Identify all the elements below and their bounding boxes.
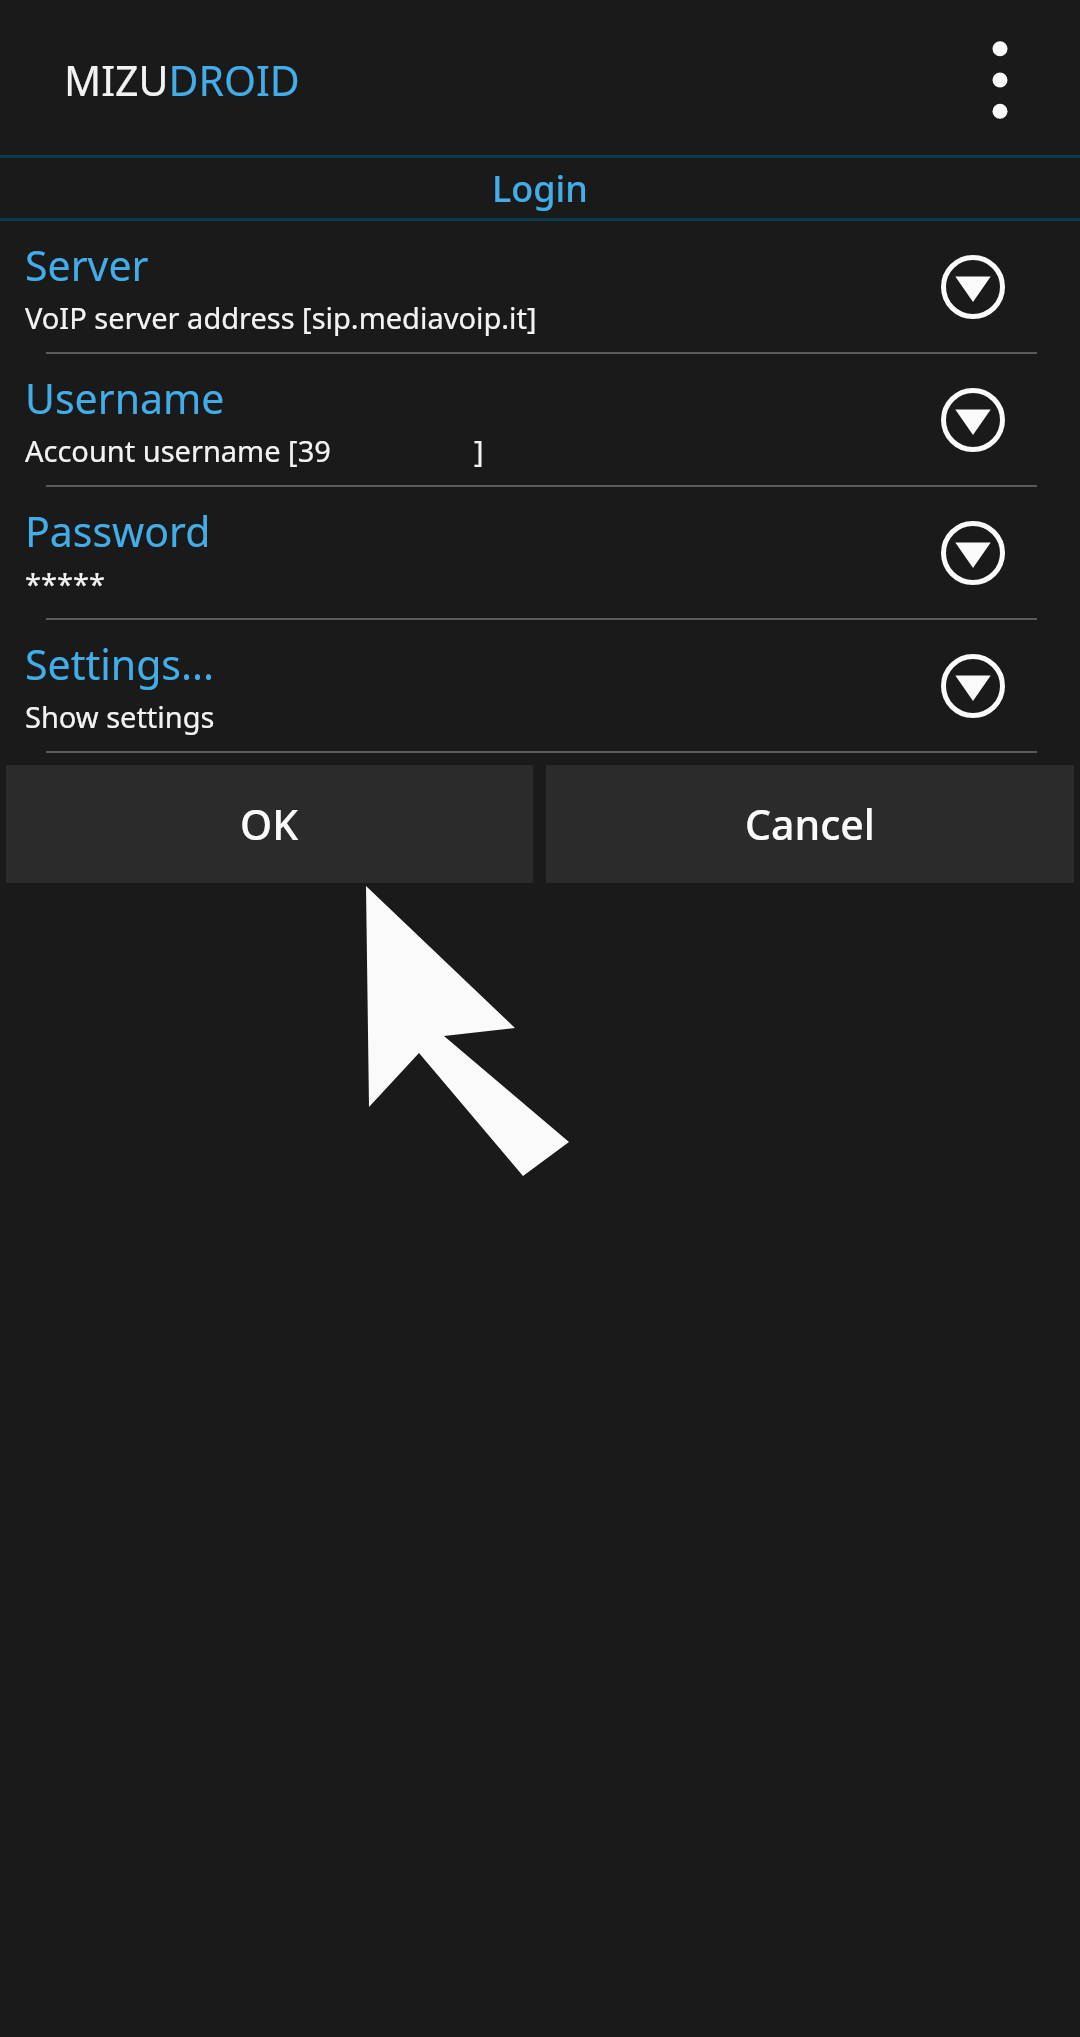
button[interactable]: More options — [942, 22, 1058, 138]
staticText: Settings... — [25, 636, 214, 692]
button[interactable]: Login — [0, 158, 1080, 218]
staticText: VoIP server address [sip.mediavoip.it] — [25, 298, 537, 337]
button[interactable]: Settings... — [0, 620, 1080, 753]
button[interactable]: Expand Username — [907, 354, 1038, 485]
button[interactable]: Expand Server — [907, 221, 1038, 352]
button[interactable]: Expand Password — [907, 487, 1038, 618]
staticText: Account username [39 ] — [25, 431, 484, 470]
staticText: ***** — [25, 564, 105, 603]
button[interactable]: Password — [0, 487, 1080, 620]
button[interactable]: Username — [0, 354, 1080, 487]
staticText: Username — [25, 370, 225, 426]
button[interactable]: Expand Settings... — [907, 620, 1038, 751]
staticText: OK — [240, 796, 299, 852]
staticText: MIZUDROID — [64, 52, 300, 108]
button[interactable]: Cancel — [546, 765, 1074, 883]
button[interactable]: OK — [6, 765, 533, 883]
staticText: Server — [25, 237, 149, 293]
staticText: Login — [492, 164, 588, 213]
staticText: Cancel — [745, 796, 875, 852]
staticText: Show settings — [25, 697, 215, 736]
staticText: Password — [25, 503, 211, 559]
button[interactable]: Server — [0, 221, 1080, 354]
